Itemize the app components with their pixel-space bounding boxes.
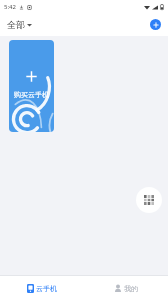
staticText: 云手机 — [36, 284, 57, 293]
button[interactable]: 我的 — [84, 276, 168, 300]
button[interactable]: 云手机 — [0, 276, 84, 300]
button[interactable]: 切换视图 — [136, 187, 162, 213]
staticText: 购买云手机 — [14, 90, 49, 99]
staticText: 我的 — [124, 284, 138, 293]
button[interactable]: 全部 — [6, 17, 33, 32]
staticText: 5:42 — [4, 3, 16, 11]
staticText: 全部 — [7, 19, 25, 30]
button[interactable]: 添加 — [150, 19, 161, 30]
button[interactable]: 购买云手机 — [9, 40, 54, 132]
